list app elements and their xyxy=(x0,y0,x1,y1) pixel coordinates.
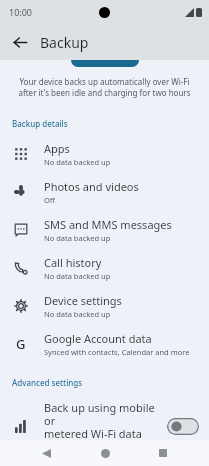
staticText: No data backed up xyxy=(44,309,111,319)
button[interactable]: Back xyxy=(6,28,34,56)
staticText: Your device backs up automatically over … xyxy=(12,76,197,99)
button[interactable]: Back up using mobile or metered Wi-Fi da… xyxy=(0,394,209,458)
staticText: No data backed up xyxy=(44,233,111,243)
staticText: Backup xyxy=(40,33,89,52)
staticText: G xyxy=(16,335,26,353)
staticText: 10:00 xyxy=(9,6,33,18)
staticText: Off xyxy=(44,195,56,205)
button[interactable]: Device settings xyxy=(0,287,209,325)
button[interactable]: Call history xyxy=(0,249,209,287)
button[interactable]: Photos and videos xyxy=(0,173,209,211)
staticText: Synced with contacts, Calendar and more xyxy=(44,347,190,357)
staticText: Back up using mobile or metered Wi-Fi da… xyxy=(44,400,161,441)
staticText: No data backed up xyxy=(44,271,111,281)
staticText: Advanced settings xyxy=(12,377,83,388)
button[interactable]: Recent apps xyxy=(150,440,176,466)
staticText: Backup details xyxy=(12,118,68,129)
button[interactable]: Home xyxy=(92,440,118,466)
staticText: Device settings xyxy=(44,293,122,308)
staticText: Call history xyxy=(44,255,102,270)
staticText: No data backed up xyxy=(44,157,111,167)
staticText: Charges may apply xyxy=(44,442,112,452)
staticText: Apps xyxy=(44,141,70,156)
button[interactable]: Back up now xyxy=(71,60,139,67)
button[interactable]: G xyxy=(0,325,209,363)
button[interactable]: Back up using mobile or metered Wi-Fi da… xyxy=(167,418,199,435)
button[interactable]: SMS and MMS messages xyxy=(0,211,209,249)
staticText: Google Account data xyxy=(44,331,152,346)
staticText: SMS and MMS messages xyxy=(44,217,172,232)
staticText: Photos and videos xyxy=(44,179,139,194)
button[interactable]: Apps xyxy=(0,135,209,173)
button[interactable]: Back xyxy=(33,440,59,466)
